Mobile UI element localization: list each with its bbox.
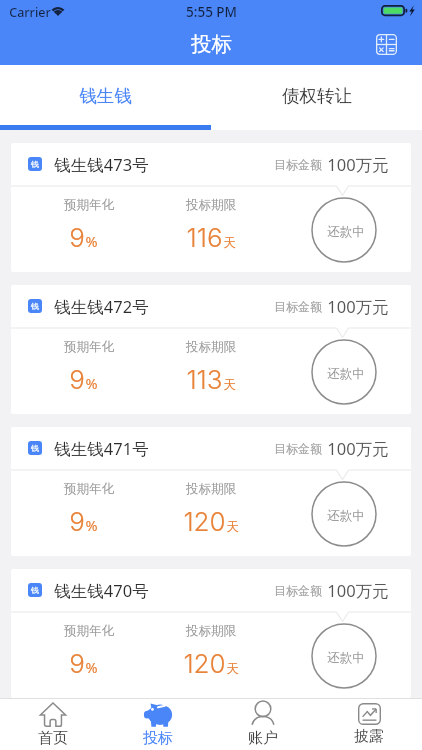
staticText: 天 [226,661,239,677]
staticText: 钱 [31,159,39,169]
staticText: 100万元 [327,579,389,602]
staticText: 120 [183,648,226,679]
staticText: 9 [69,222,85,253]
button[interactable]: 钱生钱 [0,65,211,130]
button[interactable]: 首页 [0,699,105,750]
staticText: 债权转让 [282,85,352,107]
staticText: 钱生钱471号 [54,437,149,460]
staticText: 120 [183,506,226,537]
staticText: 还款中 [327,224,365,240]
staticText: 天 [226,519,239,535]
staticText: 钱 [31,301,39,311]
staticText: 100万元 [327,153,389,176]
staticText: 天 [223,235,236,251]
staticText: 披露 [354,727,384,746]
staticText: 钱生钱 [79,85,132,107]
staticText: 投标期限 [186,623,236,639]
staticText: 投标 [143,729,173,748]
staticText: 钱 [31,443,39,453]
staticText: 目标金额 [274,157,322,172]
staticText: 投标期限 [186,481,236,497]
staticText: 预期年化 [64,197,114,213]
staticText: 100万元 [327,295,389,318]
staticText: 9 [69,648,85,679]
button[interactable]: 钱 [11,427,411,556]
staticText: 预期年化 [64,481,114,497]
button[interactable]: 钱 [11,569,411,698]
staticText: 钱生钱470号 [54,579,149,602]
button[interactable]: 投标 [105,699,210,750]
staticText: 9 [69,364,85,395]
staticText: % [85,515,98,535]
staticText: 钱生钱472号 [54,295,149,318]
staticText: 账户 [248,729,278,748]
staticText: 还款中 [327,650,365,666]
staticText: 预期年化 [64,623,114,639]
staticText: 目标金额 [274,299,322,314]
staticText: 5:55 PM [186,3,237,21]
staticText: 9 [69,506,85,537]
staticText: 116 [186,222,223,253]
staticText: 天 [223,377,236,393]
button[interactable]: 钱 [11,285,411,414]
button[interactable]: Calculator [371,29,401,59]
staticText: % [85,373,98,393]
button[interactable]: 账户 [210,699,316,750]
staticText: 100万元 [327,437,389,460]
staticText: 钱 [31,585,39,595]
staticText: 投标期限 [186,339,236,355]
staticText: 预期年化 [64,339,114,355]
staticText: 还款中 [327,508,365,524]
staticText: 钱生钱473号 [54,153,149,176]
staticText: 目标金额 [274,441,322,456]
staticText: 投标 [191,31,232,57]
staticText: % [85,657,98,677]
staticText: 还款中 [327,366,365,382]
button[interactable]: 披露 [316,699,422,750]
staticText: 投标期限 [186,197,236,213]
button[interactable]: 钱 [11,143,411,272]
staticText: 113 [186,364,223,395]
staticText: % [85,231,98,251]
button[interactable]: 债权转让 [211,65,422,130]
staticText: 目标金额 [274,583,322,598]
staticText: 首页 [38,729,68,748]
staticText: Carrier [9,4,51,21]
